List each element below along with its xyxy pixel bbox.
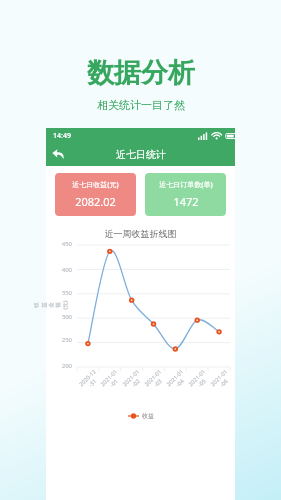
button[interactable]: 近七日收益(元) xyxy=(55,173,136,216)
staticText: 400 xyxy=(61,266,72,274)
staticText: 2082.02 xyxy=(75,194,116,209)
staticText: 250 xyxy=(61,336,72,344)
staticText: 近七日订单数(单) xyxy=(159,180,213,190)
staticText: 近一周收益折线图 xyxy=(46,228,235,239)
staticText: 收益金额(元) xyxy=(32,300,68,309)
staticText: 数据分析 xyxy=(87,56,195,90)
staticText: 14:49 xyxy=(53,131,71,141)
staticText: 2021-01-05 xyxy=(186,367,212,393)
staticText: 相关统计一目了然 xyxy=(97,98,185,112)
staticText: 450 xyxy=(61,240,72,248)
button[interactable]: Back xyxy=(49,145,67,163)
staticText: 2020-12-31 xyxy=(77,368,102,392)
staticText: 近七日统计 xyxy=(116,148,166,161)
button[interactable]: 近七日订单数(单) xyxy=(145,173,226,216)
staticText: 2021-01-04 xyxy=(164,367,190,393)
staticText: 350 xyxy=(61,289,72,297)
staticText: 1472 xyxy=(173,194,199,209)
staticText: 收益 xyxy=(142,412,154,420)
staticText: 200 xyxy=(61,362,72,370)
staticText: 近七日收益(元) xyxy=(72,180,119,190)
staticText: 2021-01-06 xyxy=(208,367,234,393)
staticText: 2021-01-03 xyxy=(142,367,168,393)
staticText: 300 xyxy=(61,313,72,321)
staticText: 2021-01-02 xyxy=(120,367,146,393)
staticText: 2021-01-01 xyxy=(98,367,124,393)
